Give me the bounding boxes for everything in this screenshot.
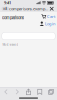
button[interactable]: Back — [1, 88, 10, 96]
staticText: aA — [3, 7, 7, 10]
button[interactable]: Forward — [13, 88, 22, 96]
button[interactable]: Cart — [41, 14, 55, 19]
button[interactable]: Page settings — [2, 7, 9, 11]
staticText: 9:41 — [4, 0, 11, 5]
button[interactable]: Tabs — [46, 88, 55, 96]
staticText: comparisons — [2, 14, 24, 21]
button[interactable]: Log in — [39, 21, 55, 26]
staticText: comparisons.example.com — [9, 6, 48, 11]
button[interactable]: Bookmarks — [35, 88, 44, 96]
staticText: Cart — [47, 14, 55, 19]
staticText: Most viewed — [2, 43, 18, 46]
staticText: Log in — [45, 21, 55, 26]
button[interactable]: Close — [48, 6, 55, 11]
button[interactable]: Share — [24, 88, 33, 96]
